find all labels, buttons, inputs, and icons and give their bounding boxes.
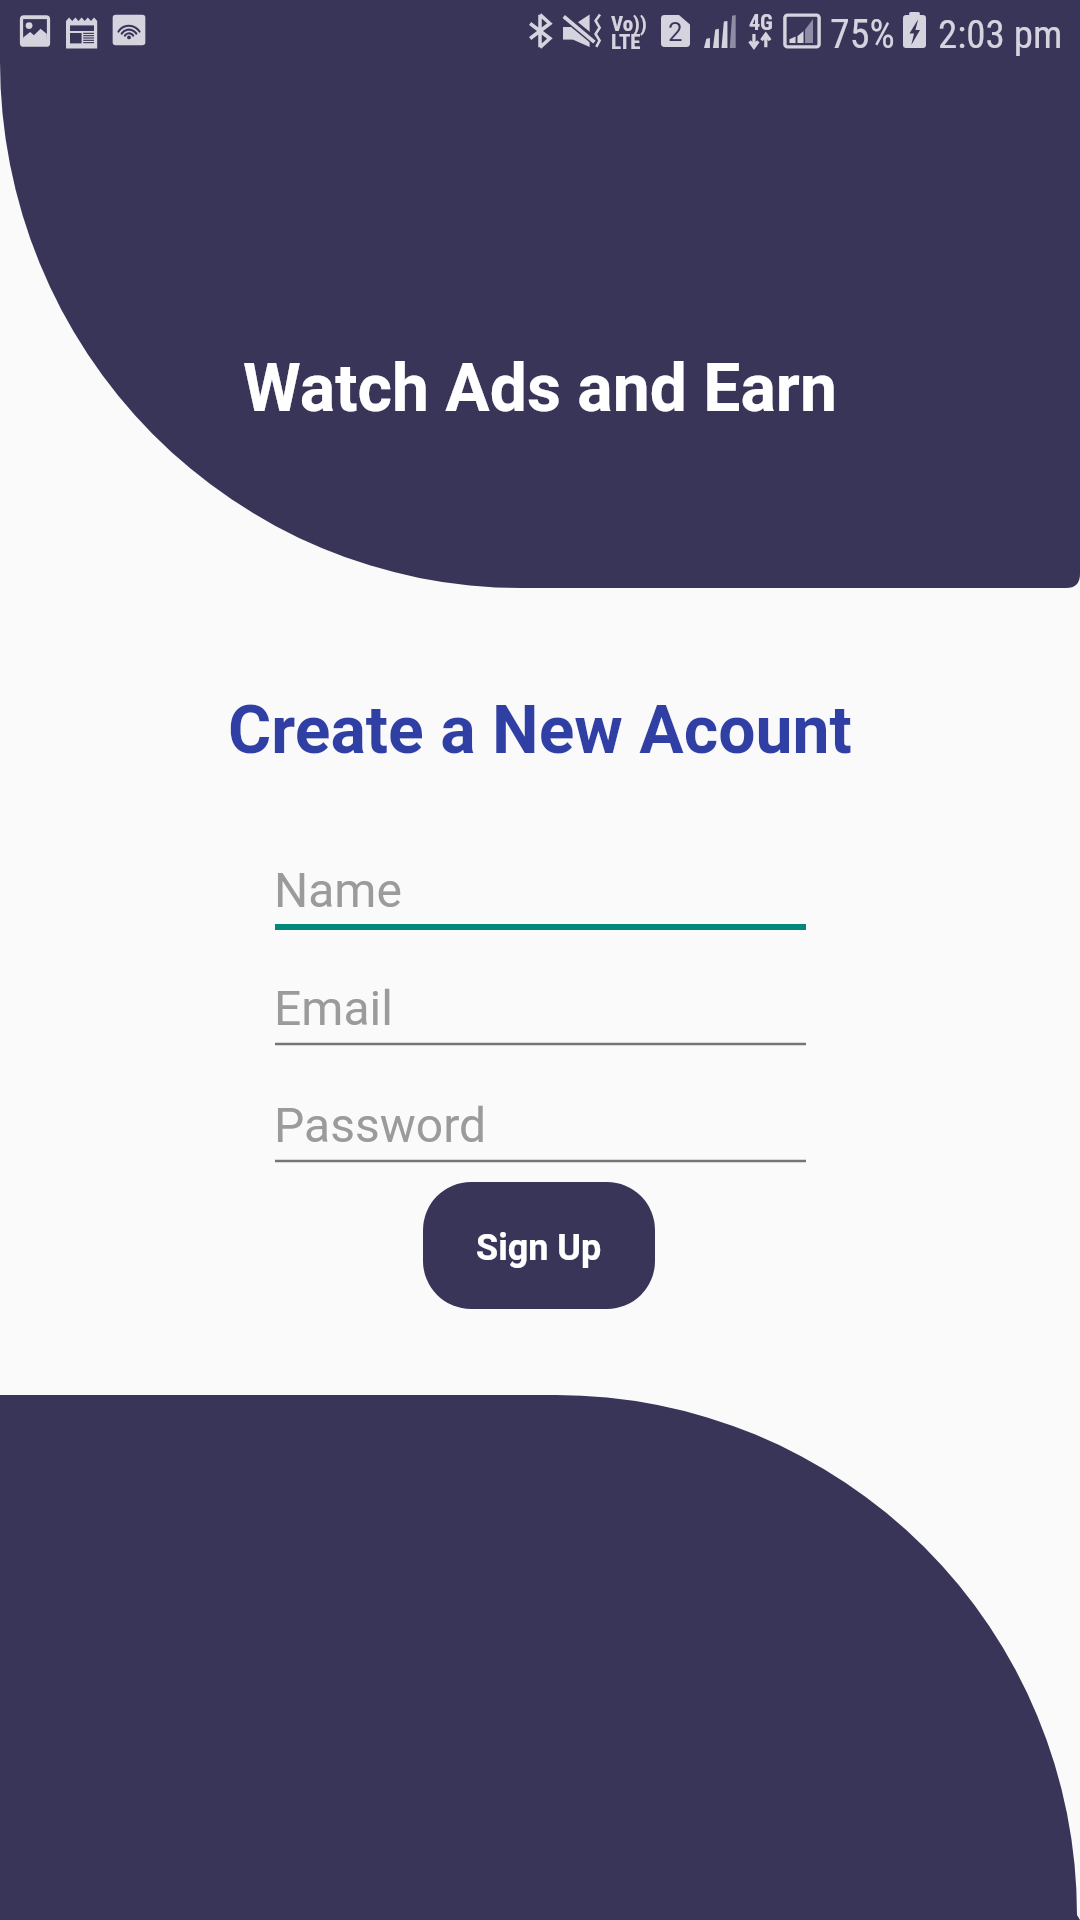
staticText: Email bbox=[274, 980, 393, 1036]
staticText: Password bbox=[274, 1097, 487, 1153]
other: News bbox=[62, 11, 102, 51]
button[interactable]: Email bbox=[275, 956, 806, 1064]
staticText: 2:03 pm bbox=[938, 12, 1063, 58]
staticText: LTE bbox=[611, 30, 641, 55]
staticText: 4G bbox=[749, 10, 773, 36]
staticText: Sign Up bbox=[476, 1227, 602, 1269]
staticText: Watch Ads and Earn bbox=[243, 350, 837, 427]
staticText: Create a New Acount bbox=[228, 692, 852, 769]
other: Wi-Fi bbox=[110, 11, 148, 49]
button[interactable]: Password bbox=[275, 1073, 806, 1181]
button[interactable]: Sign Up bbox=[423, 1182, 655, 1309]
other: Screenshot bbox=[17, 13, 53, 49]
staticText: Name bbox=[274, 862, 402, 918]
staticText: 75% bbox=[830, 11, 895, 58]
button[interactable]: Name bbox=[275, 838, 806, 947]
staticText: Vo)) bbox=[611, 12, 647, 37]
staticText: 2 bbox=[668, 17, 683, 47]
